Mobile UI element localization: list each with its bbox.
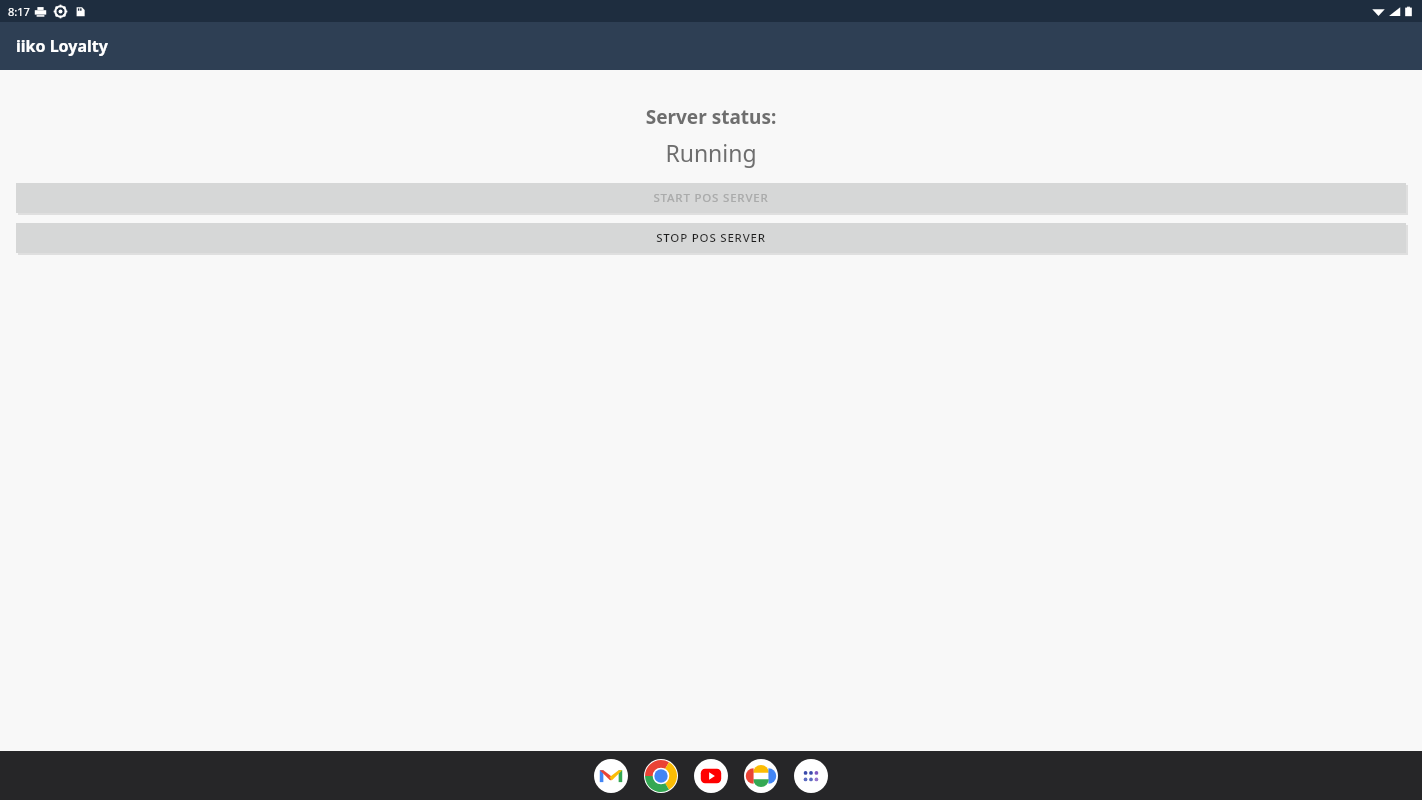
button[interactable]: All apps [794, 759, 828, 793]
button[interactable]: Google Photos [744, 759, 778, 793]
staticText: STOP POS SERVER [656, 230, 766, 246]
staticText: 8:17 [8, 4, 30, 19]
staticText: Running [0, 137, 1422, 168]
button[interactable]: YouTube [694, 759, 728, 793]
button[interactable]: Gmail [594, 759, 628, 793]
button[interactable]: START POS SERVER [16, 183, 1406, 213]
button[interactable]: Chrome [644, 759, 678, 793]
staticText: iiko Loyalty [16, 35, 108, 57]
staticText: Server status: [0, 104, 1422, 130]
button[interactable]: STOP POS SERVER [16, 223, 1406, 253]
staticText: START POS SERVER [653, 190, 769, 206]
